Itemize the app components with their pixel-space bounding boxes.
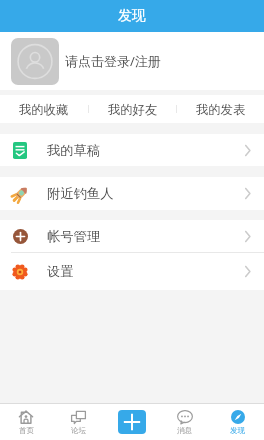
button[interactable]: 发布	[118, 410, 146, 434]
button[interactable]: 消息	[158, 410, 211, 435]
button[interactable]: 我的发表	[177, 95, 264, 123]
staticText: 帐号管理	[47, 228, 101, 245]
button[interactable]: 帐号管理	[0, 220, 264, 252]
staticText: 请点击登录/注册	[65, 52, 161, 70]
button[interactable]: 请点击登录/注册	[0, 32, 264, 90]
staticText: 附近钓鱼人	[47, 185, 114, 202]
button[interactable]: 我的收藏	[0, 95, 88, 123]
button[interactable]: 发现	[211, 410, 264, 435]
staticText: 我的草稿	[47, 142, 101, 159]
staticText: 论坛	[71, 426, 86, 435]
button[interactable]: 首页	[0, 410, 52, 435]
button[interactable]: 我的草稿	[0, 134, 264, 166]
staticText: 设置	[47, 263, 74, 280]
staticText: 我的收藏	[19, 102, 69, 117]
button[interactable]: 附近钓鱼人	[0, 177, 264, 210]
button[interactable]: 设置	[0, 253, 264, 290]
staticText: 消息	[177, 426, 192, 435]
button[interactable]: 我的好友	[89, 95, 176, 123]
staticText: 首页	[19, 426, 34, 435]
staticText: 我的发表	[196, 102, 246, 117]
staticText: 发现	[230, 426, 245, 435]
button[interactable]: 论坛	[52, 410, 105, 435]
staticText: 我的好友	[108, 102, 158, 117]
staticText: 发现	[118, 7, 146, 25]
